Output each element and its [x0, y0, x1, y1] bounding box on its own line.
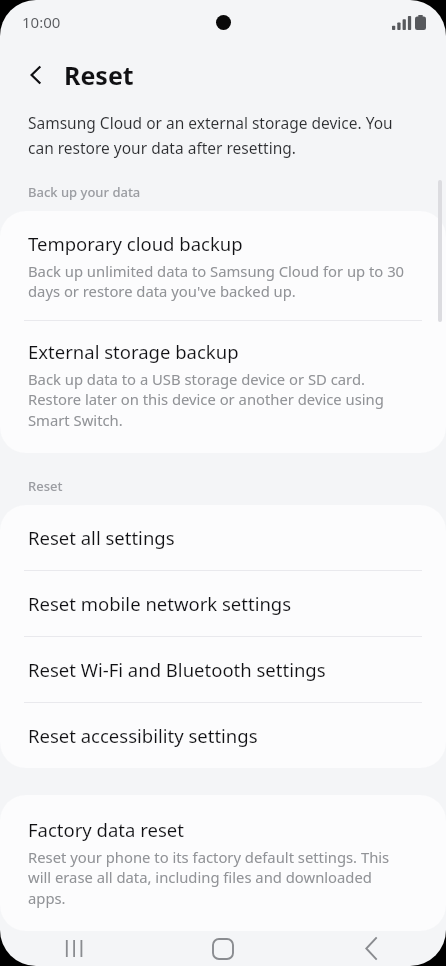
- staticText: External storage backup: [28, 339, 239, 364]
- staticText: Back up your data: [28, 183, 141, 201]
- button[interactable]: External storage backup: [0, 321, 446, 453]
- staticText: Reset: [64, 58, 134, 92]
- button[interactable]: Factory data reset: [0, 795, 446, 931]
- staticText: Reset: [28, 477, 63, 495]
- staticText: Samsung Cloud or an external storage dev…: [28, 112, 408, 159]
- button[interactable]: Reset Wi-Fi and Bluetooth settings: [0, 637, 446, 702]
- button[interactable]: Reset mobile network settings: [0, 571, 446, 636]
- button[interactable]: Temporary cloud backup: [0, 211, 446, 320]
- staticText: Reset accessibility settings: [28, 723, 258, 748]
- staticText: Reset Wi-Fi and Bluetooth settings: [28, 657, 326, 682]
- staticText: Back up data to a USB storage device or …: [28, 369, 410, 431]
- staticText: Factory data reset: [28, 817, 184, 842]
- button[interactable]: Reset all settings: [0, 505, 446, 570]
- button[interactable]: Home: [148, 931, 297, 966]
- button[interactable]: Recents: [0, 931, 148, 966]
- staticText: Temporary cloud backup: [28, 231, 243, 256]
- button[interactable]: Back: [297, 931, 446, 966]
- staticText: Reset mobile network settings: [28, 591, 292, 616]
- button[interactable]: Back: [14, 53, 58, 97]
- staticText: Reset your phone to its factory default …: [28, 847, 410, 909]
- staticText: Reset all settings: [28, 525, 175, 550]
- staticText: Back up unlimited data to Samsung Cloud …: [28, 261, 410, 302]
- staticText: 10:00: [22, 12, 61, 32]
- button[interactable]: Reset accessibility settings: [0, 703, 446, 768]
